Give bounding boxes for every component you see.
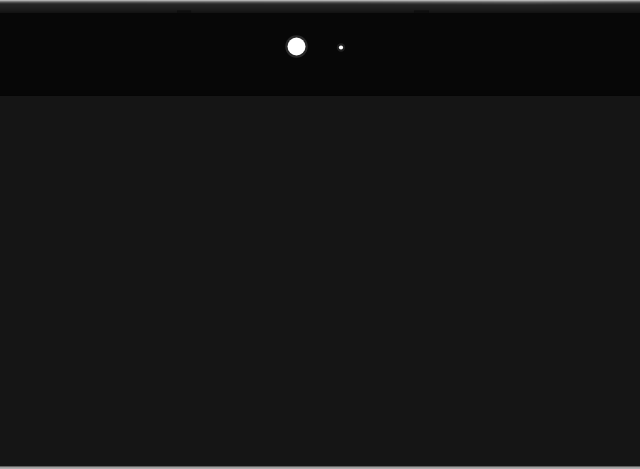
button[interactable]: Camera [0,13,640,96]
